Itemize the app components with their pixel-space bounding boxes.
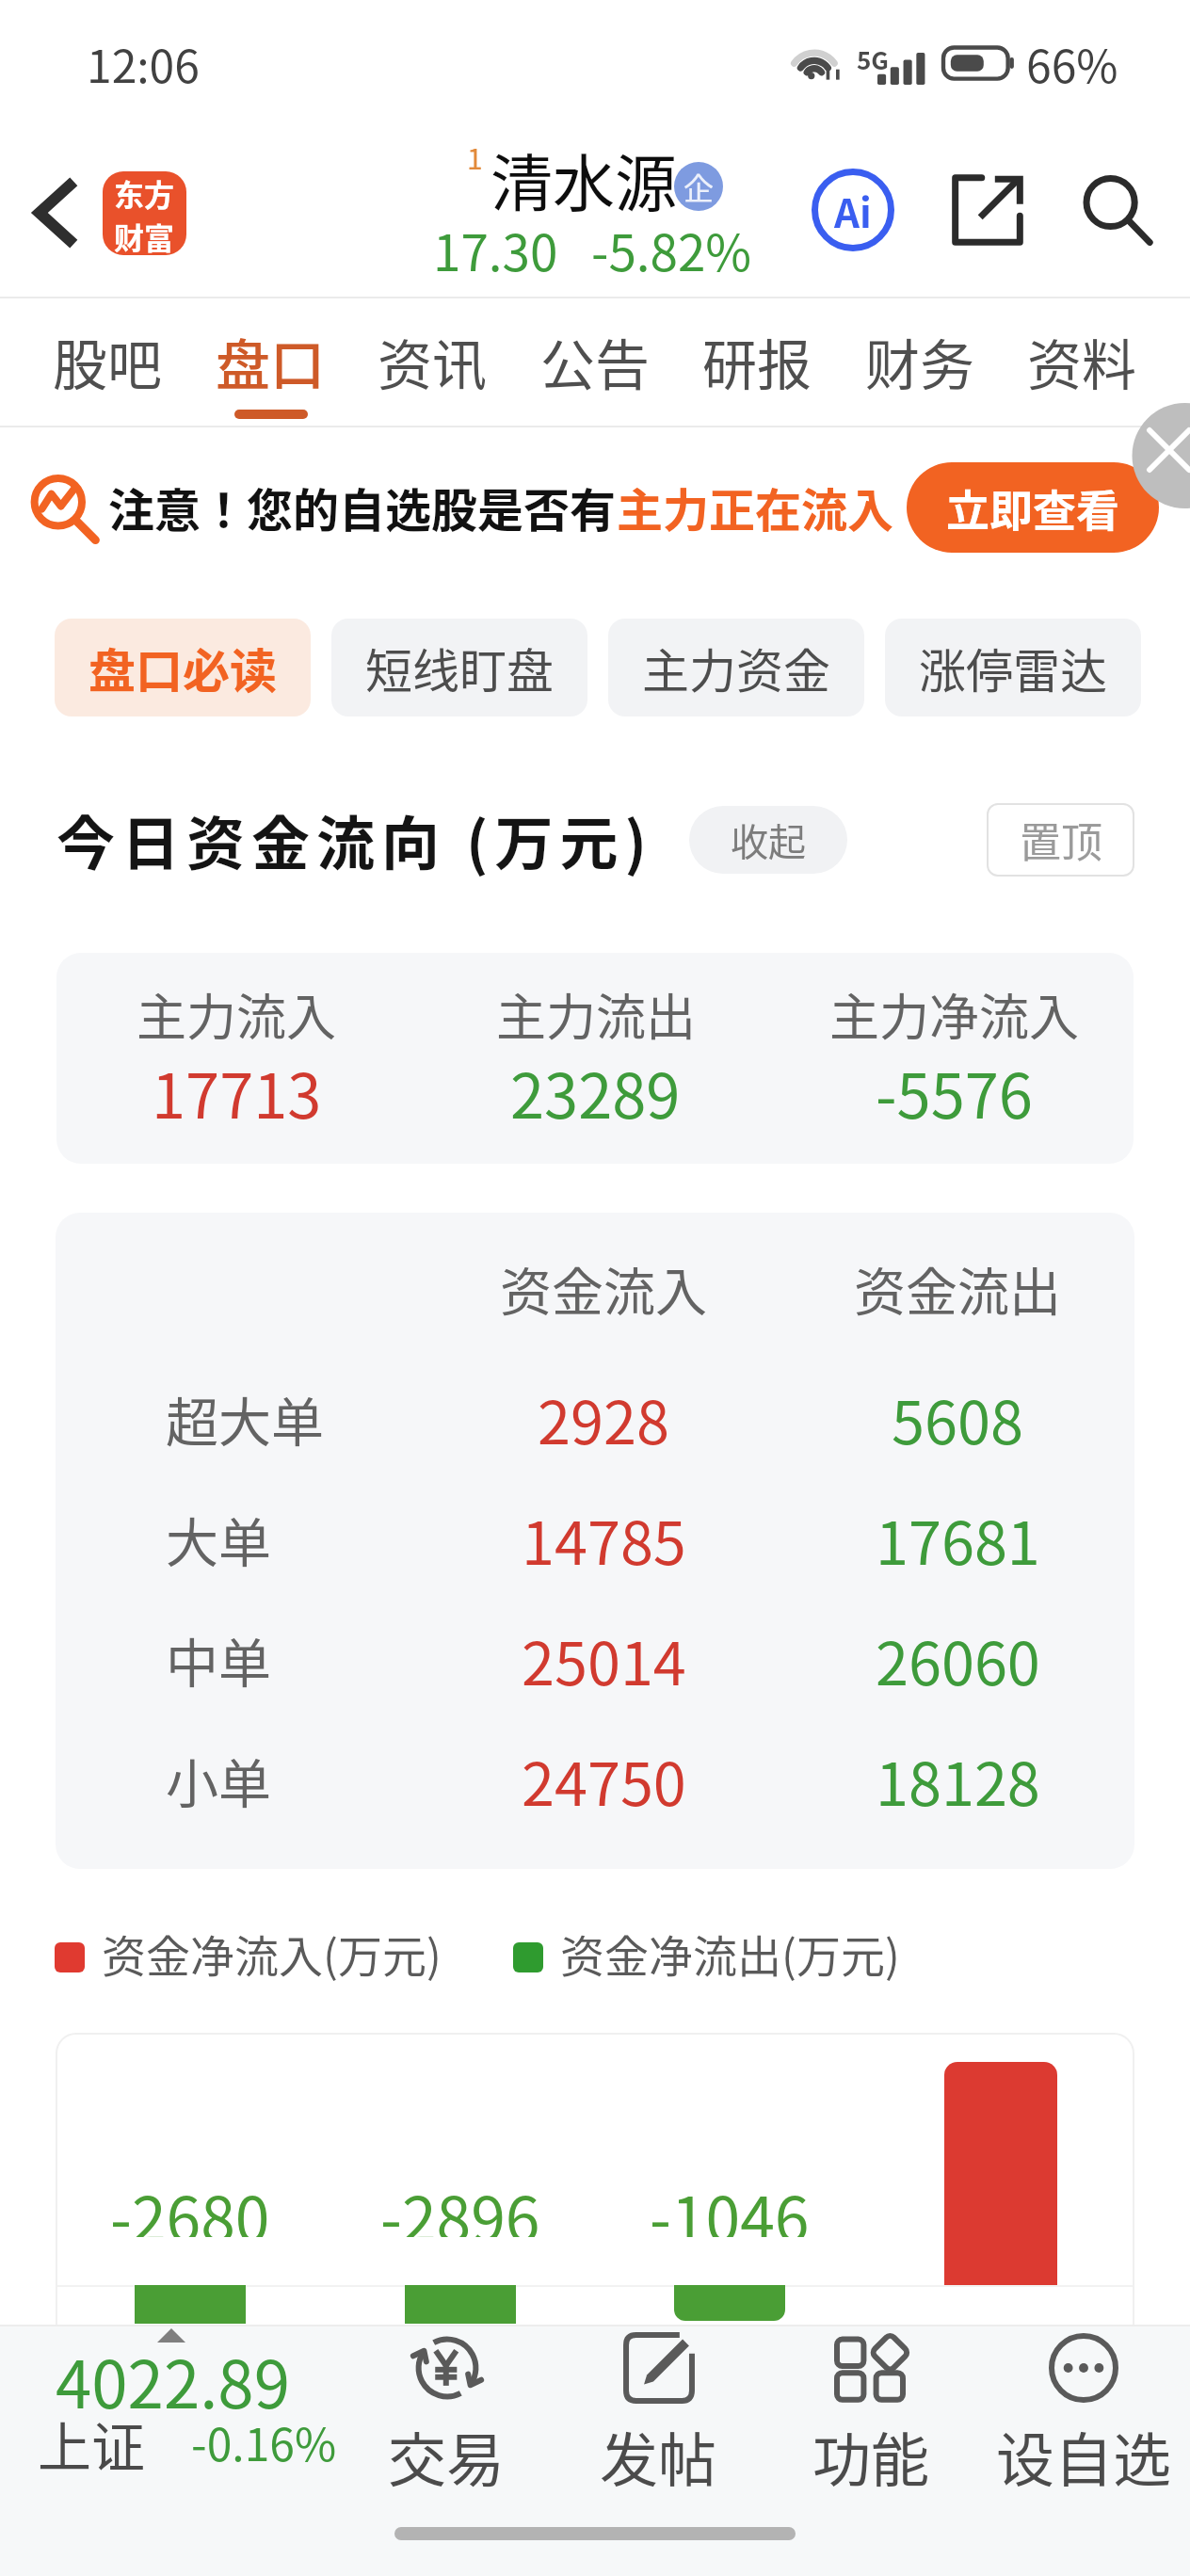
button[interactable]: Back: [0, 122, 94, 297]
staticText: 资金净流入(万元): [102, 1921, 442, 1985]
button[interactable]: 公告: [531, 298, 660, 410]
button[interactable]: 收起: [689, 806, 847, 874]
staticText: 主力正在流入: [617, 474, 894, 540]
button[interactable]: 财务: [856, 298, 985, 410]
button[interactable]: 立即查看: [907, 462, 1159, 553]
staticText: 功能: [812, 2414, 930, 2499]
button[interactable]: 短线盯盘: [331, 619, 587, 716]
staticText: -1046: [650, 2169, 810, 2237]
staticText: 小单: [166, 1742, 271, 1818]
staticText: 今日资金流向 (万元): [56, 797, 653, 882]
staticText: 12:06: [87, 30, 200, 96]
staticText: 立即查看: [946, 476, 1119, 539]
button[interactable]: 研报: [693, 298, 822, 410]
button[interactable]: AI assistant: [774, 122, 932, 297]
staticText: 17681: [876, 1496, 1040, 1582]
staticText: 24750: [522, 1737, 686, 1823]
staticText: 主力净流入: [829, 978, 1079, 1051]
button[interactable]: 盘口: [206, 298, 335, 419]
staticText: 注意！您的自选股是否有: [108, 474, 617, 540]
staticText: -5.82%: [591, 214, 752, 286]
staticText: 资讯: [378, 322, 488, 401]
staticText: 4022.89: [56, 2333, 290, 2427]
staticText: 财务: [865, 322, 975, 401]
button[interactable]: 置顶: [987, 803, 1134, 877]
staticText: 25014: [522, 1617, 686, 1702]
staticText: -2680: [110, 2169, 270, 2237]
staticText: 5G: [857, 41, 889, 77]
staticText: 交易: [388, 2414, 506, 2499]
button[interactable]: 4022.89: [0, 2326, 341, 2576]
staticText: 资金流出: [854, 1250, 1062, 1326]
staticText: 中单: [166, 1621, 271, 1698]
staticText: 18128: [876, 1737, 1040, 1823]
staticText: 资金净流出(万元): [560, 1921, 900, 1985]
staticText: 清水源: [490, 134, 677, 224]
button[interactable]: 功能: [764, 2326, 977, 2576]
staticText: 资金流入: [500, 1250, 708, 1326]
staticText: 公告: [540, 322, 651, 401]
button[interactable]: 资料: [1018, 298, 1147, 410]
staticText: 企: [683, 165, 715, 208]
staticText: 短线盯盘: [365, 634, 554, 701]
staticText: 盘口: [216, 322, 326, 401]
staticText: 23289: [510, 1048, 681, 1136]
button[interactable]: 盘口必读: [55, 619, 311, 716]
staticText: 发帖: [600, 2414, 717, 2499]
button[interactable]: East Money: [103, 171, 186, 255]
staticText: 26060: [876, 1617, 1040, 1702]
staticText: -2896: [380, 2169, 540, 2237]
button[interactable]: 股吧: [43, 298, 172, 410]
button[interactable]: 资讯: [368, 298, 497, 410]
button[interactable]: Share: [932, 122, 1043, 297]
staticText: 14785: [522, 1496, 686, 1582]
staticText: 东方: [114, 171, 175, 215]
staticText: -5576: [876, 1048, 1033, 1136]
staticText: 设自选: [996, 2414, 1172, 2499]
staticText: 上证: [38, 2405, 145, 2483]
staticText: 盘口必读: [88, 634, 277, 701]
button[interactable]: 发帖: [553, 2326, 764, 2576]
staticText: 17.30: [433, 214, 558, 286]
button[interactable]: Close: [1086, 427, 1190, 531]
staticText: 资料: [1027, 322, 1137, 401]
staticText: 置顶: [1020, 810, 1102, 870]
staticText: 2928: [538, 1376, 669, 1461]
staticText: 涨停雷达: [919, 634, 1107, 701]
button[interactable]: 设自选: [977, 2326, 1190, 2576]
button[interactable]: Search: [1043, 122, 1190, 297]
staticText: 大单: [166, 1501, 271, 1577]
staticText: 财富: [114, 215, 175, 255]
staticText: -0.16%: [191, 2408, 337, 2474]
staticText: 股吧: [53, 322, 163, 401]
staticText: 超大单: [166, 1380, 324, 1457]
staticText: 66%: [1026, 30, 1118, 96]
staticText: 17713: [152, 1048, 322, 1136]
staticText: 研报: [702, 322, 812, 401]
button[interactable]: 涨停雷达: [885, 619, 1141, 716]
button[interactable]: 交易: [341, 2326, 553, 2576]
staticText: 5608: [892, 1376, 1023, 1461]
staticText: 1: [467, 137, 483, 177]
staticText: 主力流出: [496, 978, 696, 1051]
staticText: 主力资金: [642, 634, 830, 701]
staticText: 收起: [731, 813, 806, 867]
staticText: 主力流入: [137, 978, 336, 1051]
button[interactable]: 主力资金: [608, 619, 864, 716]
staticText: Ai: [834, 182, 872, 239]
